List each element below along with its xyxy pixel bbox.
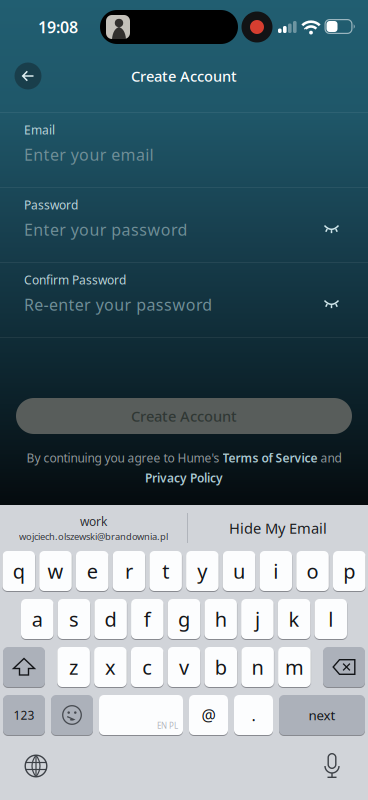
staticText: d	[105, 606, 117, 632]
button[interactable]: i	[259, 551, 292, 591]
staticText: z	[69, 654, 78, 680]
staticText: next	[308, 706, 335, 724]
staticText: p	[343, 558, 355, 584]
button[interactable]: Show password	[323, 224, 340, 236]
button[interactable]: z	[57, 647, 90, 687]
button[interactable]: Shift	[3, 647, 45, 687]
staticText: Enter your password	[24, 219, 187, 240]
staticText: Re-enter your password	[24, 294, 212, 315]
staticText: t	[162, 558, 169, 584]
button[interactable]: x	[94, 647, 127, 687]
button[interactable]: k	[278, 599, 310, 639]
staticText: c	[142, 654, 152, 680]
button[interactable]: d	[94, 599, 127, 639]
staticText: 123	[13, 707, 34, 723]
button[interactable]: h	[204, 599, 237, 639]
button[interactable]: a	[21, 599, 53, 639]
button[interactable]: f	[131, 599, 164, 639]
staticText: Hide My Email	[229, 518, 327, 538]
staticText: k	[289, 606, 300, 632]
staticText: By continuing you agree to Hume's	[26, 450, 219, 466]
staticText: q	[13, 558, 25, 584]
button[interactable]: Show password	[323, 299, 340, 311]
button[interactable]: c	[131, 647, 163, 687]
button[interactable]: l	[314, 599, 347, 639]
button[interactable]: g	[168, 599, 200, 639]
button[interactable]: 123	[3, 695, 45, 735]
staticText: 19:08	[38, 16, 78, 38]
button[interactable]: work	[0, 505, 187, 550]
staticText: l	[328, 606, 333, 632]
button[interactable]: e	[76, 551, 108, 591]
button[interactable]: s	[58, 599, 90, 639]
button[interactable]: j	[241, 599, 274, 639]
staticText: w	[47, 558, 63, 584]
button[interactable]: v	[168, 647, 200, 687]
button[interactable]: Delete	[323, 647, 365, 687]
staticText: a	[32, 606, 43, 632]
button[interactable]: w	[39, 551, 72, 591]
button[interactable]: p	[333, 551, 365, 591]
staticText: Email	[24, 122, 55, 138]
button[interactable]: Privacy Policy	[145, 470, 223, 486]
staticText: work	[80, 513, 107, 529]
staticText: f	[144, 606, 151, 632]
button[interactable]: y	[186, 551, 219, 591]
button[interactable]: Dictation	[324, 753, 340, 779]
staticText: v	[179, 654, 189, 680]
staticText: h	[215, 606, 227, 632]
staticText: o	[306, 558, 318, 584]
staticText: and	[320, 450, 341, 466]
button[interactable]: Terms of Service	[222, 450, 317, 466]
staticText: e	[87, 558, 98, 584]
button[interactable]: m	[278, 647, 311, 687]
staticText: r	[125, 558, 133, 584]
button[interactable]: t	[149, 551, 182, 591]
staticText: Terms of Service	[222, 450, 317, 466]
button[interactable]: Next keyboard	[24, 754, 47, 777]
staticText: g	[178, 606, 190, 632]
button[interactable]: Space	[99, 695, 183, 735]
button[interactable]: o	[296, 551, 329, 591]
button[interactable]: r	[113, 551, 145, 591]
staticText: s	[69, 606, 79, 632]
button[interactable]: Create Account	[16, 398, 352, 434]
button[interactable]: b	[204, 647, 237, 687]
staticText: b	[215, 654, 227, 680]
staticText: m	[285, 654, 304, 680]
staticText: i	[273, 558, 278, 584]
staticText: EN PL	[157, 720, 178, 731]
button[interactable]: Back	[14, 62, 41, 89]
button[interactable]: .	[234, 695, 273, 735]
staticText: Confirm Password	[24, 272, 126, 288]
button[interactable]: n	[241, 647, 274, 687]
staticText: Enter your email	[24, 144, 153, 165]
staticText: x	[105, 654, 116, 680]
staticText: .	[251, 704, 255, 726]
staticText: n	[252, 654, 264, 680]
staticText: j	[255, 606, 260, 632]
staticText: Create Account	[131, 406, 237, 426]
staticText: Password	[24, 197, 78, 213]
staticText: Create Account	[131, 66, 237, 86]
button[interactable]: @	[189, 695, 228, 735]
button[interactable]: q	[2, 551, 35, 591]
staticText: Privacy Policy	[145, 470, 223, 486]
button[interactable]: Hide My Email	[188, 505, 368, 550]
staticText: @	[201, 704, 215, 726]
staticText: u	[233, 558, 245, 584]
button[interactable]: Emoji	[51, 695, 93, 735]
staticText: wojciech.olszewski@brandownia.pl	[19, 530, 168, 543]
button[interactable]: next	[279, 695, 365, 735]
button[interactable]: u	[223, 551, 255, 591]
staticText: y	[197, 558, 207, 584]
